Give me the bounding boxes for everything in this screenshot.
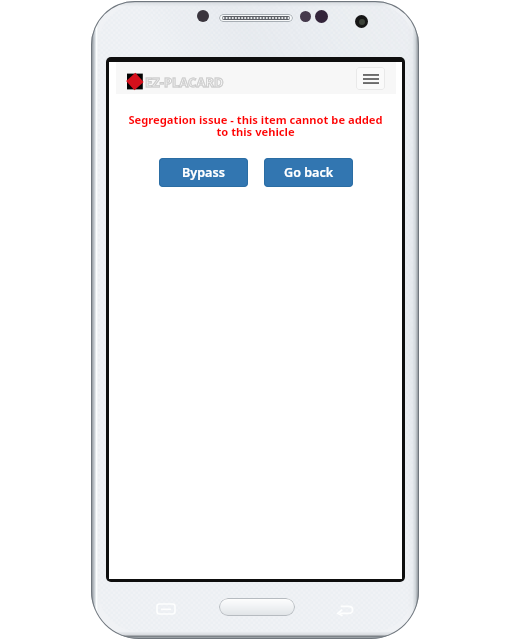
button[interactable]: Recent apps: [157, 604, 175, 614]
button[interactable]: Back: [337, 604, 354, 615]
staticText: Go back: [284, 164, 334, 181]
staticText: EZ-PLACARD: [145, 73, 224, 91]
staticText: Segregation issue - this item cannot be …: [123, 112, 388, 140]
button[interactable]: Go back: [264, 158, 353, 187]
button[interactable]: Home: [219, 598, 295, 616]
button[interactable]: Open navigation menu: [356, 67, 385, 90]
staticText: Bypass: [182, 164, 225, 181]
button[interactable]: EZ-PLACARD: [127, 72, 224, 91]
staticText: EZ-PLACARD: [145, 73, 224, 91]
button[interactable]: Bypass: [159, 158, 248, 187]
